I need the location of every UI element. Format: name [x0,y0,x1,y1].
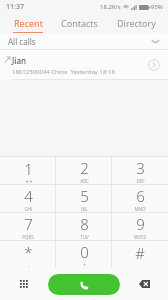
button[interactable]: 0 [56,241,112,268]
staticText: 6 [136,186,145,206]
staticText: MNO [134,206,146,212]
staticText: 5 [80,186,89,206]
button[interactable]: All calls [0,33,168,50]
button[interactable]: Call [48,274,120,295]
button[interactable]: * [0,241,56,268]
button[interactable]: 5 [56,185,112,212]
button[interactable]: 2 [56,157,112,184]
staticText: DEF [136,178,145,184]
button[interactable]: 9 [112,213,168,240]
staticText: 1 [24,159,33,179]
button[interactable]: Hide keypad [0,268,48,300]
button[interactable]: 6 [112,185,168,212]
staticText: , [28,262,30,268]
button[interactable]: Call details [148,59,160,71]
button[interactable]: # [112,241,168,268]
staticText: GHI [24,206,33,212]
staticText: WXYZ [134,234,146,240]
staticText: 4 [24,186,33,206]
button[interactable]: Contacts [55,13,104,33]
button[interactable]: 3 [112,157,168,184]
staticText: + [83,262,86,268]
staticText: 0 [80,242,89,262]
staticText: 3 [136,158,145,178]
staticText: JKL [81,206,88,212]
button[interactable]: Backspace [120,268,168,300]
button[interactable]: 8 [56,213,112,240]
button[interactable]: 1 [0,157,56,184]
staticText: 18.2K/s [100,3,121,11]
staticText: All calls [8,36,36,47]
staticText: 18612500044 China Yesterday 18:16 [12,68,115,76]
staticText: ABC [80,178,89,184]
staticText: PQRS [22,234,34,240]
staticText: Jian [12,55,27,66]
button[interactable]: Jian [0,50,168,80]
staticText: TUV [80,234,89,240]
button[interactable]: Directory [111,13,162,33]
staticText: 2 [80,158,89,178]
staticText: 8 [80,214,89,234]
button[interactable]: 4 [0,185,56,212]
button[interactable]: 7 [0,213,56,240]
staticText: # [135,243,145,263]
staticText: * [24,242,33,262]
button[interactable]: Recent [7,13,49,33]
staticText: Recent [14,17,43,29]
staticText: Contacts [61,17,98,29]
staticText: Directory [117,17,156,29]
staticText: 11:37 [6,2,24,12]
staticText: 7 [24,214,33,234]
staticText: 95% [151,3,163,11]
staticText: 9 [136,214,145,234]
